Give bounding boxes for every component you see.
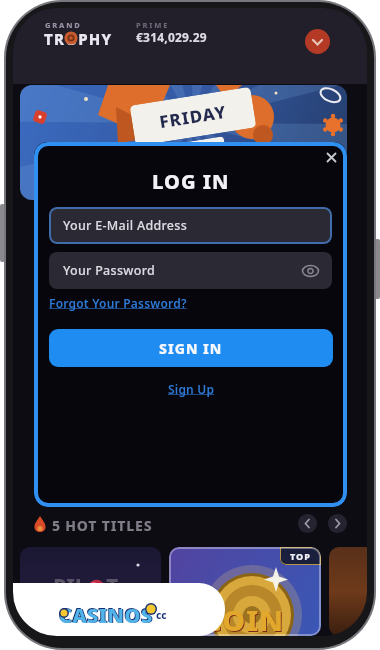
button[interactable] [322,148,340,166]
staticText: PRIME [136,20,170,30]
staticText: Sign Up [168,381,215,397]
staticText: cc [156,608,167,622]
staticText: CASINOS [59,602,153,629]
staticText: COIN [204,601,285,636]
staticText: Your Password [63,262,156,279]
staticText: FRIDAY [158,100,228,133]
button[interactable] [329,547,367,636]
button[interactable]: TOP [169,547,321,636]
staticText: TROPHY [44,29,113,49]
staticText: PIL [53,572,87,601]
button[interactable] [328,514,347,533]
staticText: SIGN IN [159,339,223,358]
staticText: Your E-Mail Address [63,217,188,234]
button[interactable]: FRIDAY [20,85,347,200]
button[interactable]: Your E-Mail Address [49,207,332,244]
staticText: T [106,572,119,601]
button[interactable]: PIL [20,547,161,636]
staticText: LOG IN [152,168,230,195]
button[interactable] [298,514,317,533]
staticText: CASINOS [58,601,152,628]
staticText: TOP [290,550,311,562]
button[interactable]: SIGN IN [49,329,333,367]
staticText: COIN [203,600,284,636]
button[interactable]: Sign Up [141,381,241,397]
button[interactable]: Forgot Your Password? [49,295,187,311]
staticText: €314,029.29 [136,29,207,45]
button[interactable] [305,29,330,54]
staticText: BONUS [161,142,215,168]
staticText: CASINOS [60,602,154,629]
staticText: 5 HOT TITLES [52,516,153,535]
staticText: GRAND [45,20,82,30]
button[interactable]: Your Password [49,252,332,289]
